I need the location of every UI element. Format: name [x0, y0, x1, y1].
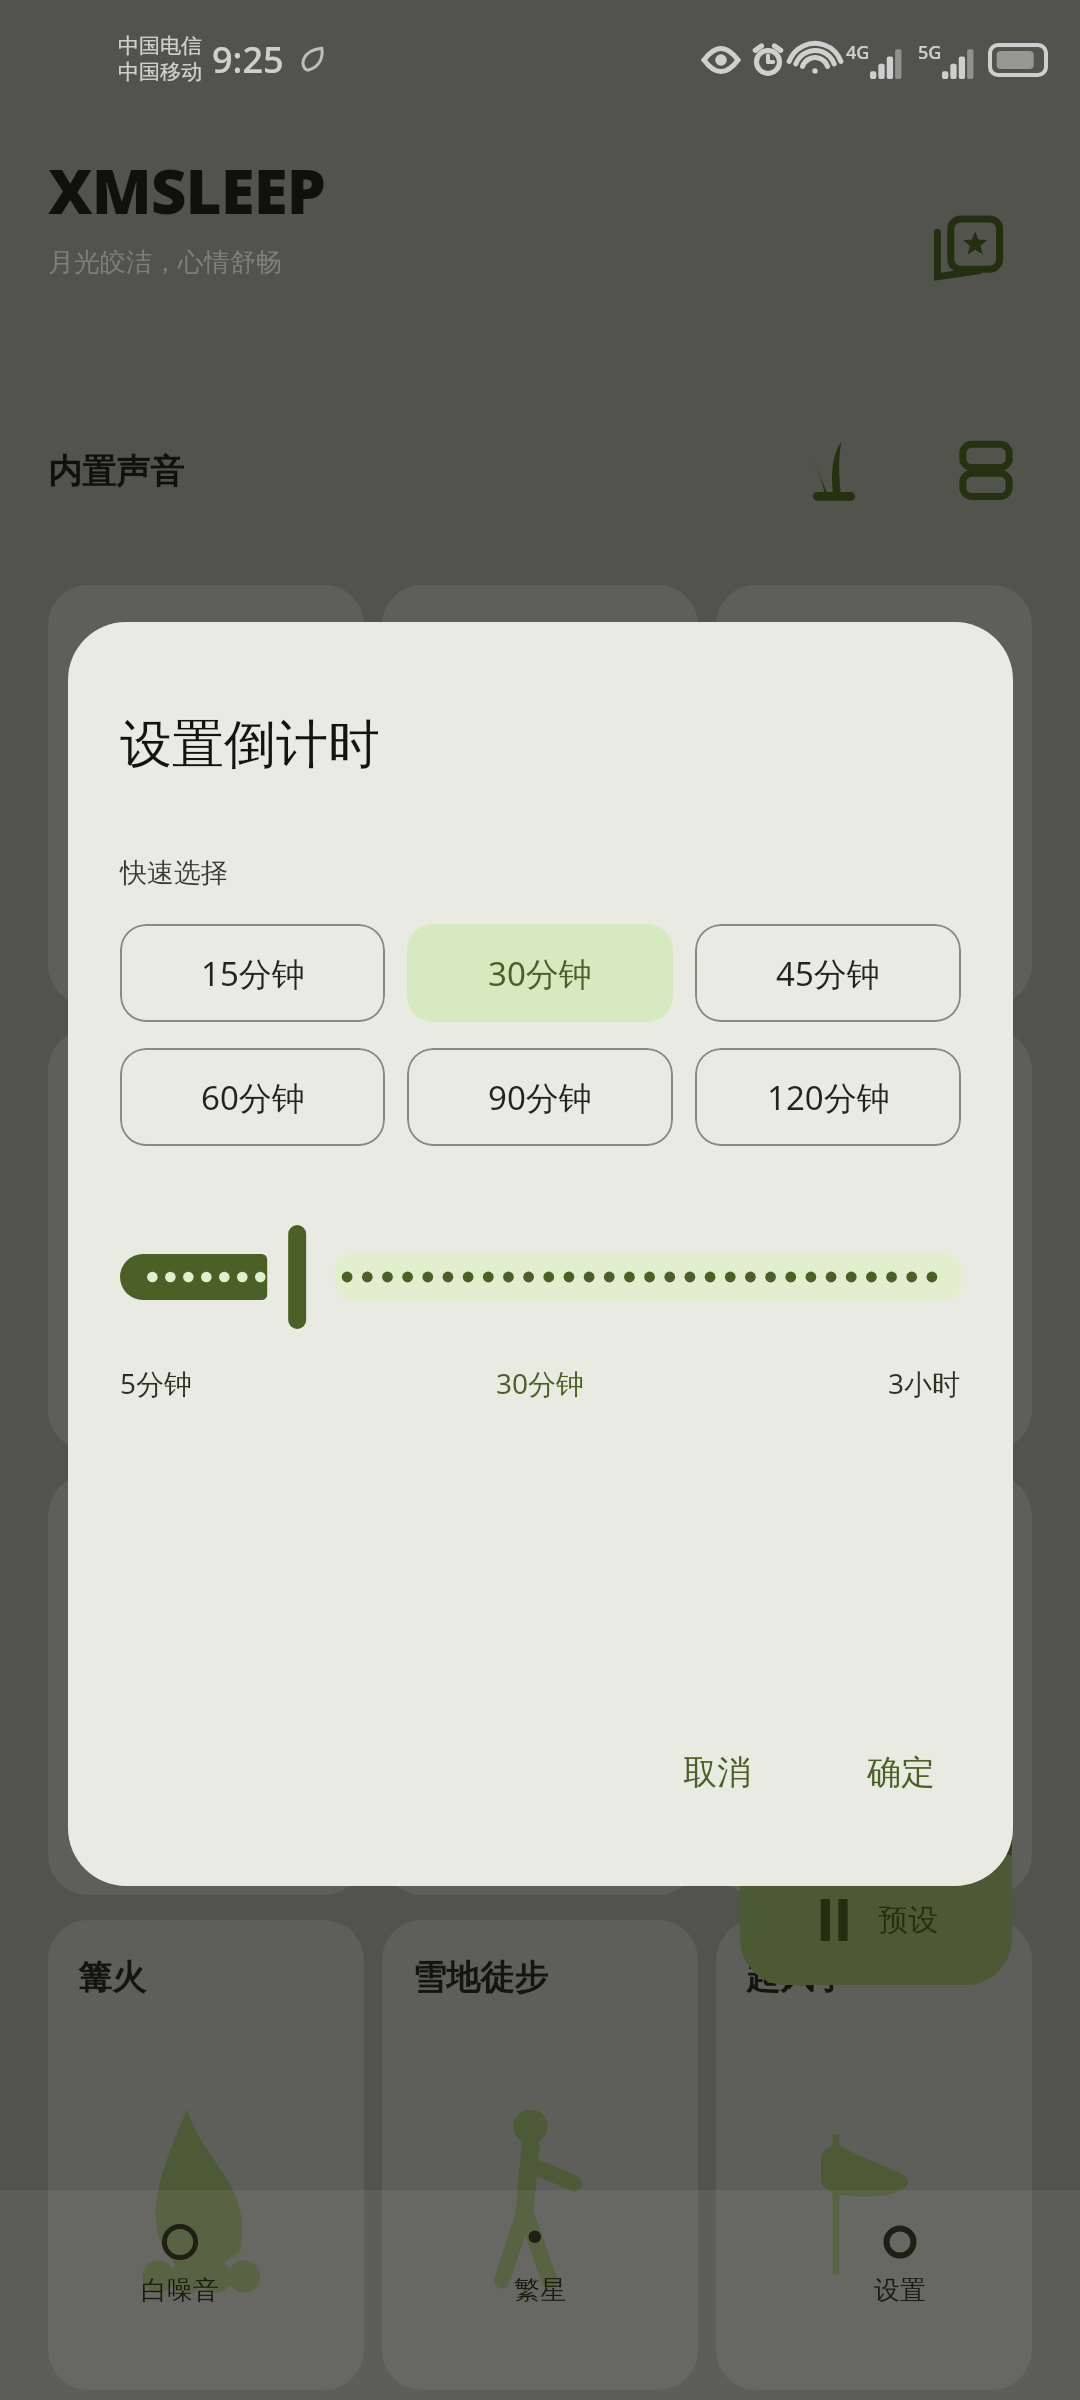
button[interactable]: 60分钟	[120, 1048, 385, 1146]
staticText: 确定	[867, 1751, 935, 1794]
staticText: 30分钟	[488, 951, 592, 996]
button[interactable]	[48, 1475, 364, 1895]
staticText: 设置倒计时	[120, 712, 380, 778]
button[interactable]: 确定	[841, 1737, 961, 1808]
staticText: 篝火	[78, 1956, 146, 1999]
button[interactable]	[382, 1030, 698, 1450]
staticText: 120分钟	[767, 1075, 890, 1120]
button[interactable]: 设置	[720, 2190, 1080, 2400]
staticText: 中国移动	[118, 59, 202, 85]
button[interactable]	[48, 585, 364, 1005]
staticText: 快速选择	[120, 856, 228, 890]
button[interactable]: 预设	[740, 1855, 1012, 1985]
staticText: 60分钟	[201, 1075, 305, 1120]
button[interactable]: 起风了	[716, 1920, 1032, 2390]
button[interactable]: 白噪音	[0, 2190, 360, 2400]
button[interactable]: 收藏	[900, 180, 1040, 320]
staticText: 45分钟	[776, 951, 880, 996]
button[interactable]	[382, 585, 698, 1005]
button[interactable]	[740, 1585, 1012, 1895]
staticText: 雪地徒步	[412, 1956, 548, 1999]
staticText: 15分钟	[201, 951, 305, 996]
staticText: 9:25	[212, 35, 284, 84]
staticText: 5分钟	[120, 1364, 193, 1402]
button[interactable]: 雪地徒步	[382, 1920, 698, 2390]
button[interactable]: 自然	[788, 425, 880, 517]
button[interactable]: 15分钟	[120, 924, 385, 1022]
staticText: 5G	[918, 40, 942, 65]
staticText: 取消	[683, 1751, 751, 1794]
staticText: 预设	[878, 1901, 938, 1939]
staticText: 白噪音	[141, 2274, 219, 2307]
button[interactable]	[120, 1212, 961, 1342]
button[interactable]	[382, 1475, 698, 1895]
button[interactable]: 45分钟	[695, 924, 961, 1022]
button[interactable]: 90分钟	[407, 1048, 673, 1146]
staticText: XMSLEEP	[48, 148, 325, 232]
button[interactable]	[48, 1030, 364, 1450]
staticText: 月光皎洁，心情舒畅	[48, 246, 282, 279]
staticText: 30分钟	[496, 1364, 585, 1402]
staticText: 90分钟	[488, 1075, 592, 1120]
staticText: 设置	[874, 2274, 926, 2307]
button[interactable]: 120分钟	[695, 1048, 961, 1146]
staticText: 起风了	[746, 1956, 848, 1999]
button[interactable]: 篝火	[48, 1920, 364, 2390]
staticText: 中国电信	[118, 33, 202, 59]
button[interactable]: 列表视图	[940, 425, 1032, 517]
staticText: 繁星	[514, 2274, 566, 2307]
staticText: 4G	[846, 40, 870, 65]
button[interactable]	[716, 1475, 1032, 1895]
staticText: 3小时	[888, 1364, 961, 1402]
staticText: 内置声音	[48, 450, 184, 493]
button[interactable]	[716, 585, 1032, 1005]
button[interactable]	[716, 1030, 1032, 1450]
button[interactable]: 取消	[657, 1737, 777, 1808]
button[interactable]: 繁星	[360, 2190, 720, 2400]
button[interactable]: 30分钟	[407, 924, 673, 1022]
